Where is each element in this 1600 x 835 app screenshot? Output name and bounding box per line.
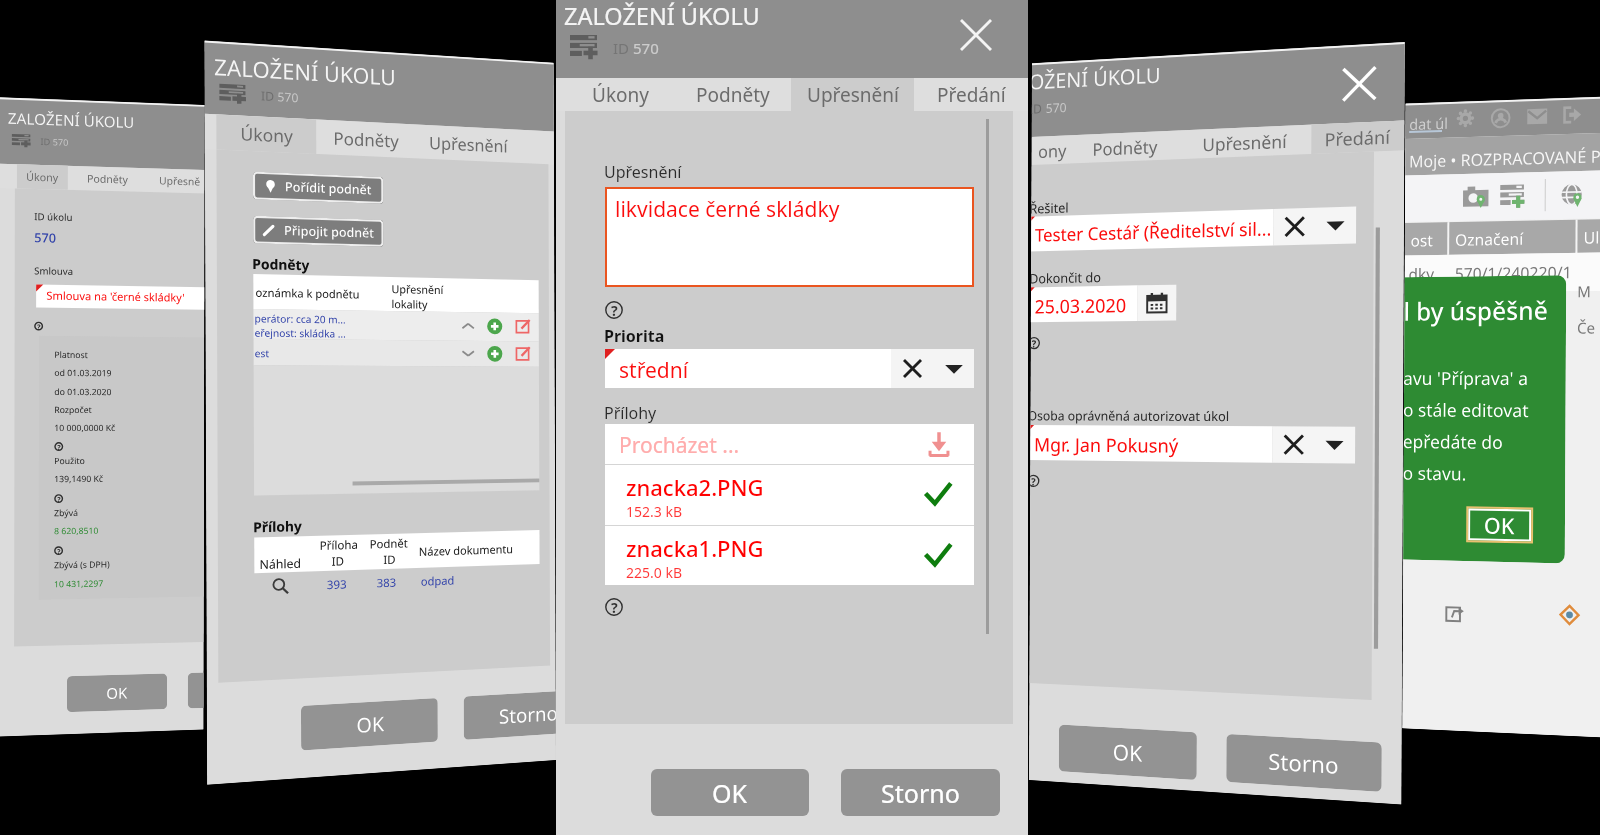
staticText: 570 bbox=[633, 38, 659, 58]
button[interactable]: Storno bbox=[841, 769, 1000, 816]
button[interactable]: OK bbox=[1468, 508, 1531, 542]
button[interactable]: znacka2.PNG bbox=[605, 465, 974, 525]
button[interactable]: Upřesnění bbox=[415, 124, 520, 163]
staticText: Přílohy bbox=[604, 402, 657, 424]
button[interactable]: Vymazat bbox=[1272, 426, 1314, 463]
staticText: Osoba oprávněná autorizovat úkol bbox=[1030, 407, 1230, 425]
button[interactable]: 25.03.2020 bbox=[1031, 285, 1138, 322]
staticText: 152.3 kB bbox=[626, 502, 682, 521]
staticText: znacka2.PNG bbox=[626, 472, 764, 502]
staticText: Úkony bbox=[592, 82, 649, 108]
staticText: ID bbox=[320, 553, 356, 570]
staticText: ZALOŽENÍ ÚKOLU bbox=[8, 108, 134, 132]
staticText: 570 bbox=[277, 88, 299, 105]
button[interactable]: OK bbox=[67, 673, 167, 712]
staticText: Upřesnění bbox=[807, 82, 899, 108]
button[interactable]: likvidace černé skládky bbox=[605, 187, 974, 287]
staticText: ? bbox=[611, 301, 618, 319]
staticText: ? bbox=[57, 442, 61, 451]
staticText: znacka1.PNG bbox=[626, 533, 764, 563]
button[interactable]: Podněty bbox=[316, 119, 415, 158]
staticText: ZALOŽENÍ ÚKOLU bbox=[564, 0, 760, 32]
staticText: Podněty bbox=[87, 171, 128, 186]
staticText: Priorita bbox=[604, 325, 665, 347]
button[interactable]: OK bbox=[651, 769, 809, 816]
button[interactable]: Předání bbox=[1311, 120, 1404, 154]
button[interactable]: Upřesně bbox=[146, 168, 204, 194]
staticText: ? bbox=[1031, 475, 1036, 487]
staticText: ID bbox=[1032, 99, 1046, 118]
staticText: Dokončit do bbox=[1031, 268, 1101, 287]
button[interactable]: Vymazat bbox=[1273, 208, 1315, 245]
staticText: OK bbox=[106, 682, 128, 703]
staticText: ? bbox=[37, 321, 41, 331]
staticText: Předání bbox=[1325, 124, 1391, 151]
button[interactable]: Zavřít bbox=[960, 19, 992, 51]
staticText: Použito bbox=[54, 455, 86, 467]
staticText: 25.03.2020 bbox=[1035, 292, 1127, 319]
button[interactable]: Storno bbox=[188, 672, 204, 708]
staticText: 139,1490 Kč bbox=[54, 473, 104, 485]
staticText: oznámka k podnětu bbox=[255, 284, 360, 301]
button[interactable]: Rozbalit bbox=[1315, 206, 1356, 244]
staticText: 393 bbox=[327, 576, 347, 593]
staticText: Zbývá (s DPH) bbox=[54, 558, 110, 571]
button[interactable]: Storno bbox=[464, 691, 556, 740]
staticText: OK bbox=[356, 710, 384, 739]
staticText: ID úkolu bbox=[34, 210, 73, 224]
staticText: 570/1/240220/1 bbox=[1455, 261, 1572, 284]
staticText: Úkony bbox=[26, 170, 59, 185]
button[interactable]: Upřesnění bbox=[1178, 124, 1311, 159]
button[interactable]: Pořídit podnět bbox=[253, 172, 383, 204]
button[interactable]: Podněty bbox=[675, 78, 791, 111]
staticText: Připojit podnět bbox=[284, 222, 375, 242]
staticText: Úkony bbox=[240, 122, 293, 148]
staticText: Upřesnění bbox=[429, 131, 508, 157]
button[interactable]: Zavřít bbox=[1340, 64, 1377, 103]
button[interactable]: Podněty bbox=[1073, 130, 1178, 163]
staticText: Rozpočet bbox=[54, 404, 93, 416]
button[interactable]: Rozbalit bbox=[1314, 426, 1355, 464]
staticText: lokality bbox=[391, 296, 428, 312]
staticText: dat úl bbox=[1409, 113, 1449, 134]
staticText: Upřesně bbox=[159, 173, 200, 188]
staticText: ? bbox=[1032, 337, 1036, 349]
staticText: 8 620,8510 bbox=[54, 525, 98, 537]
button[interactable]: Kalendář bbox=[1137, 285, 1176, 321]
staticText: Tester Cestář (Ředitelství sil... bbox=[1035, 216, 1272, 247]
button[interactable]: Předání bbox=[914, 78, 1028, 111]
button[interactable]: Tester Cestář (Ředitelství sil... bbox=[1031, 209, 1274, 251]
button[interactable]: Úkony bbox=[565, 78, 675, 111]
button[interactable]: Storno bbox=[1226, 734, 1382, 792]
button[interactable]: Upřesnění bbox=[791, 78, 914, 111]
staticText: l by úspěšně bbox=[1404, 293, 1548, 328]
button[interactable]: OK bbox=[301, 698, 438, 751]
staticText: avu 'Příprava' a bbox=[1404, 366, 1529, 391]
button[interactable]: Úkony bbox=[216, 114, 316, 154]
staticText: 383 bbox=[377, 575, 396, 591]
button[interactable]: Vymazat bbox=[891, 349, 933, 388]
staticText: ony bbox=[1038, 138, 1067, 163]
button[interactable]: Podněty bbox=[73, 166, 141, 192]
staticText: OK bbox=[1484, 510, 1515, 540]
staticText: o stále editovat bbox=[1404, 398, 1529, 423]
staticText: OK bbox=[712, 776, 748, 810]
button[interactable]: OK bbox=[1059, 724, 1197, 780]
staticText: 10 431,2297 bbox=[54, 577, 103, 590]
button[interactable]: Úkony bbox=[17, 164, 68, 190]
button[interactable]: Rozbalit bbox=[933, 349, 974, 388]
button[interactable]: ony bbox=[1031, 135, 1073, 165]
staticText: Název dokumentu bbox=[419, 541, 513, 560]
staticText: ID bbox=[40, 135, 53, 147]
button[interactable]: znacka1.PNG bbox=[605, 526, 974, 585]
staticText: epředáte do bbox=[1404, 429, 1503, 455]
staticText: Storno bbox=[499, 700, 556, 730]
staticText: Podněty bbox=[1092, 134, 1158, 161]
button[interactable]: Připojit podnět bbox=[253, 216, 383, 247]
button[interactable]: střední bbox=[605, 349, 891, 388]
staticText: odpad bbox=[421, 573, 455, 590]
button[interactable]: Mgr. Jan Pokusný bbox=[1030, 425, 1273, 463]
button[interactable]: Smlouva na 'černé skládky' bbox=[36, 284, 204, 310]
staticText: ID bbox=[370, 551, 409, 568]
button[interactable]: Procházet ... bbox=[605, 424, 974, 464]
